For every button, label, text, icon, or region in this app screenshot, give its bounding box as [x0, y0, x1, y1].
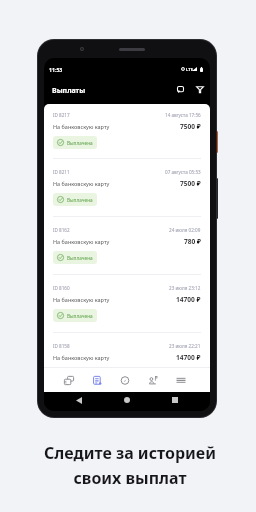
staticText: Выплачена [67, 140, 93, 146]
button[interactable]: Home [119, 392, 135, 408]
staticText: ID 8162 [53, 227, 70, 233]
staticText: ID 8211 [53, 169, 70, 175]
staticText: 7500 ₽ [180, 122, 201, 131]
button[interactable]: Filter [192, 81, 208, 97]
staticText: 07 августа 05:53 [165, 169, 201, 175]
button[interactable]: Chat [172, 81, 188, 97]
button[interactable]: Выплаты [52, 86, 86, 96]
staticText: Выплачена [67, 197, 93, 203]
button[interactable]: ID 8211 [44, 159, 210, 216]
button[interactable]: ID 8217 [44, 104, 210, 158]
staticText: ID 8158 [53, 343, 70, 349]
staticText: Следите за историей своих выплат [44, 442, 216, 488]
button[interactable]: ID 8158 [44, 333, 210, 390]
staticText: 780 ₽ [184, 237, 201, 246]
staticText: На банковскую карту [53, 180, 110, 187]
staticText: Выплачена [67, 371, 93, 377]
button[interactable]: Support [113, 368, 137, 392]
staticText: На банковскую карту [53, 354, 110, 361]
staticText: 23 июля 22:21 [169, 343, 201, 349]
staticText: На банковскую карту [53, 238, 110, 245]
staticText: ID 8217 [53, 112, 70, 118]
staticText: Выплачена [67, 255, 93, 261]
staticText: 7500 ₽ [180, 179, 201, 188]
button[interactable]: ID 8160 [44, 275, 210, 332]
staticText: 11:53 [49, 66, 63, 73]
staticText: ID 8160 [53, 285, 70, 291]
staticText: Выплаты [52, 86, 86, 96]
button[interactable]: Back [71, 392, 87, 408]
staticText: На банковскую карту [53, 296, 110, 303]
staticText: На банковскую карту [53, 123, 110, 130]
button[interactable]: Orders [57, 368, 81, 392]
button[interactable]: Recents [167, 392, 183, 408]
button[interactable]: Payouts [85, 368, 109, 392]
staticText: 14700 ₽ [176, 295, 201, 304]
staticText: 14700 ₽ [176, 353, 201, 362]
staticText: LTE [186, 67, 194, 73]
staticText: Выплачена [67, 313, 93, 319]
button[interactable]: More [169, 368, 193, 392]
button[interactable]: Profile [141, 368, 165, 392]
button[interactable]: ID 8162 [44, 217, 210, 274]
staticText: 14 августа 17:56 [165, 112, 201, 118]
staticText: 23 июля 23:12 [169, 285, 201, 291]
staticText: 24 июля 02:09 [169, 227, 201, 233]
